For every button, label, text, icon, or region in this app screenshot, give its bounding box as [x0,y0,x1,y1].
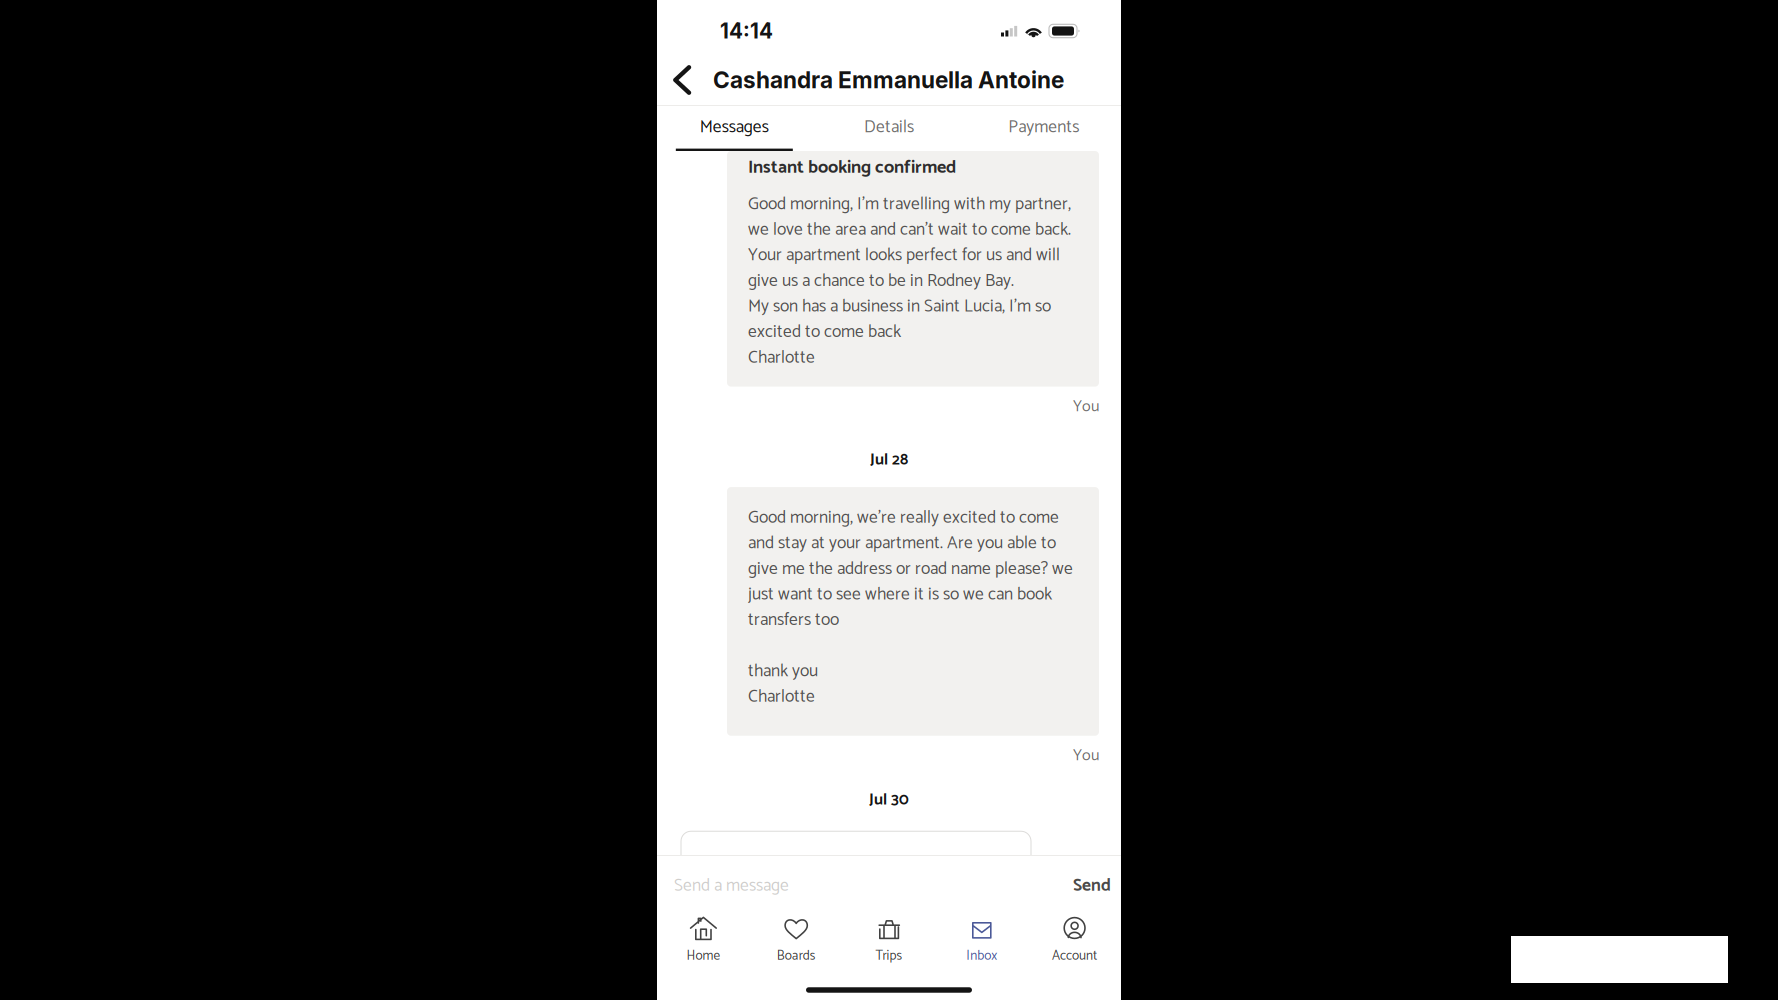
button[interactable]: Details [812,106,966,151]
button[interactable]: Messages [657,106,812,151]
button[interactable]: Trips [843,916,935,948]
staticText: You [1073,394,1099,420]
staticText: Jul 28 [870,447,908,473]
staticText: Inbox [966,945,997,967]
staticText: Details [864,113,914,141]
staticText: Instant booking confirmed [748,153,956,182]
staticText: Jul 30 [869,787,909,813]
staticText: Payments [1008,113,1079,141]
button[interactable]: Inbox [935,916,1028,948]
button[interactable]: Send [1073,872,1111,900]
staticText: 14:14 [720,18,773,43]
button[interactable]: Account [1028,916,1121,948]
staticText: Send [1073,872,1111,900]
staticText: Account [1052,945,1097,967]
staticText: Messages [700,113,769,141]
staticText: Boards [777,945,816,967]
button[interactable]: Payments [966,106,1121,151]
button[interactable]: Back [657,59,696,101]
button[interactable]: Boards [750,916,843,948]
staticText: Home [686,945,720,967]
button[interactable]: Home [657,916,750,948]
staticText: Good morning, I’m travelling with my par… [748,191,1071,371]
staticText: Send a message [674,872,789,900]
staticText: You [1073,743,1099,769]
staticText: Trips [875,945,902,967]
staticText: Cashandra Emmanuella Antoine [713,66,1064,94]
staticText: Good morning, we’re really excited to co… [748,505,1073,710]
